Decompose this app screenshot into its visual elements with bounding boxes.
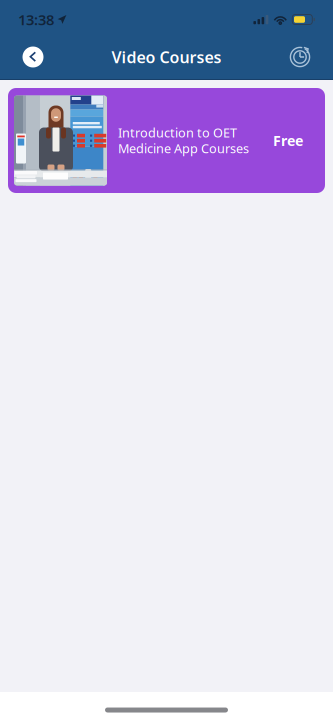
- button[interactable]: Back: [16, 40, 50, 74]
- staticText: Introduction to OET: [118, 124, 237, 141]
- staticText: Free: [273, 131, 303, 150]
- staticText: Medicine App Courses: [118, 140, 249, 157]
- staticText: Video Courses: [111, 46, 221, 68]
- button[interactable]: Introduction to OET: [8, 88, 325, 193]
- button[interactable]: History: [283, 40, 317, 74]
- staticText: 13:38: [18, 9, 54, 29]
